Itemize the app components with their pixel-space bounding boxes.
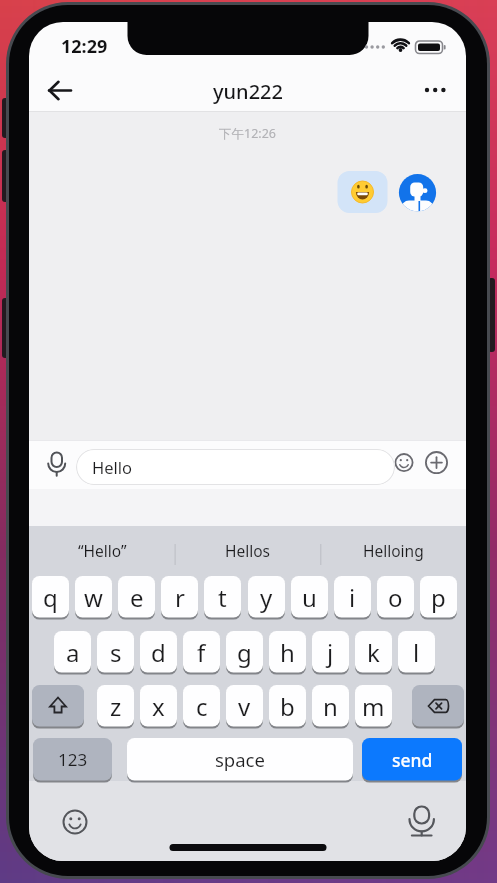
staticText: f	[197, 636, 206, 669]
button[interactable]: x	[140, 685, 177, 727]
button[interactable]: y	[248, 576, 285, 618]
button[interactable]: v	[226, 685, 263, 727]
staticText: “Hello”	[78, 540, 127, 561]
button[interactable]: s	[97, 631, 134, 673]
button[interactable]	[394, 450, 415, 476]
staticText: space	[215, 747, 265, 772]
staticText: m	[362, 690, 385, 723]
staticText: z	[110, 690, 122, 723]
staticText: send	[392, 748, 433, 772]
staticText: d	[151, 636, 166, 669]
button[interactable]: 123	[33, 738, 112, 781]
button[interactable]: e	[118, 576, 155, 618]
staticText: Helloing	[363, 540, 424, 561]
button[interactable]	[59, 806, 91, 838]
staticText: s	[110, 636, 122, 669]
staticText: c	[196, 690, 208, 723]
button[interactable]: Hello	[76, 449, 395, 485]
staticText: e	[130, 581, 144, 614]
staticText: o	[388, 581, 403, 614]
button[interactable]: o	[377, 576, 414, 618]
button[interactable]: q	[32, 576, 69, 618]
button[interactable]: m	[355, 685, 392, 727]
button[interactable]: z	[97, 685, 134, 727]
staticText: a	[66, 636, 80, 669]
staticText: 12:29	[61, 34, 108, 56]
staticText: k	[367, 636, 380, 669]
button[interactable]: l	[398, 631, 435, 673]
staticText: q	[43, 581, 58, 614]
staticText: n	[323, 690, 338, 723]
button[interactable]	[412, 685, 464, 727]
staticText: g	[237, 636, 252, 669]
button[interactable]: “Hello”	[29, 534, 175, 567]
staticText: x	[152, 690, 165, 723]
staticText: h	[280, 636, 295, 669]
button[interactable]: n	[312, 685, 349, 727]
button[interactable]: i	[334, 576, 371, 618]
button[interactable]: d	[140, 631, 177, 673]
staticText: 123	[58, 748, 88, 771]
button[interactable]: t	[204, 576, 241, 618]
button[interactable]: Hellos	[175, 534, 321, 567]
button[interactable]: g	[226, 631, 263, 673]
button[interactable]: a	[54, 631, 91, 673]
staticText: y	[260, 581, 273, 614]
staticText: l	[413, 636, 420, 669]
button[interactable]	[39, 74, 83, 108]
staticText: v	[238, 690, 251, 723]
staticText: yun222	[213, 78, 283, 105]
button[interactable]: r	[161, 576, 198, 618]
staticText: Hellos	[225, 540, 271, 561]
staticText: j	[327, 636, 334, 669]
staticText: u	[302, 581, 317, 614]
button[interactable]: h	[269, 631, 306, 673]
button[interactable]	[399, 174, 436, 211]
button[interactable]: space	[127, 738, 353, 781]
button[interactable]: c	[183, 685, 220, 727]
button[interactable]: f	[183, 631, 220, 673]
button[interactable]: p	[420, 576, 457, 618]
button[interactable]: j	[312, 631, 349, 673]
button[interactable]: k	[355, 631, 392, 673]
button[interactable]	[405, 802, 439, 838]
button[interactable]: send	[362, 738, 462, 781]
button[interactable]	[425, 451, 448, 475]
staticText: p	[431, 581, 446, 614]
button[interactable]	[32, 685, 84, 727]
button[interactable]: w	[75, 576, 112, 618]
staticText: 下午12:26	[219, 125, 276, 142]
button[interactable]: u	[291, 576, 328, 618]
staticText: Hello	[92, 456, 133, 478]
button[interactable]	[338, 171, 388, 213]
staticText: b	[280, 690, 295, 723]
button[interactable]	[416, 74, 456, 108]
button[interactable]: Helloing	[320, 534, 466, 567]
staticText: r	[175, 581, 185, 614]
staticText: t	[218, 581, 227, 614]
staticText: i	[349, 581, 356, 614]
button[interactable]: b	[269, 685, 306, 727]
staticText: w	[84, 581, 103, 614]
button[interactable]	[41, 446, 73, 482]
